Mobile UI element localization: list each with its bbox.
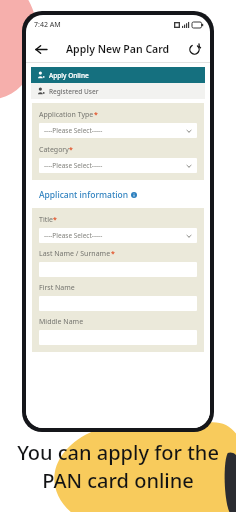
staticText: ----Please Select----- [44, 231, 103, 240]
staticText: * [111, 249, 115, 259]
staticText: ----Please Select----- [44, 161, 103, 170]
staticText: * [94, 110, 98, 120]
staticText: PAN card online [42, 467, 194, 494]
button[interactable]: Apply Online [31, 67, 205, 83]
button[interactable]: Registered User [31, 83, 205, 99]
staticText: Application Type [39, 110, 94, 120]
staticText: You can apply for the [17, 439, 219, 466]
staticText: Middle Name [39, 317, 84, 327]
staticText: Applicant information [39, 189, 128, 201]
staticText: Apply Online [49, 71, 89, 80]
staticText: Registered User [49, 87, 99, 96]
button[interactable]: Back [31, 39, 51, 59]
button[interactable]: ----Please Select----- [39, 123, 197, 138]
staticText: Last Name / Surname [39, 249, 111, 259]
button[interactable]: Refresh [184, 39, 204, 59]
staticText: * [69, 145, 73, 155]
button[interactable]: ----Please Select----- [39, 158, 197, 173]
staticText: Title [39, 215, 53, 225]
button[interactable]: ----Please Select----- [39, 228, 197, 243]
staticText: Category [39, 145, 69, 155]
staticText: ----Please Select----- [44, 126, 103, 135]
staticText: * [53, 215, 57, 225]
staticText: Apply New Pan Card [66, 42, 170, 56]
staticText: 7:42 AM [34, 20, 61, 30]
staticText: First Name [39, 283, 75, 293]
